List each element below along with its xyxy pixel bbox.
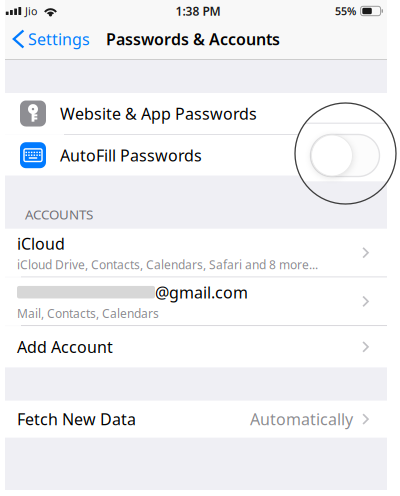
staticText: Mail, Contacts, Calendars	[17, 305, 159, 321]
button[interactable]: iCloud	[5, 229, 387, 277]
staticText: 1:38 PM	[175, 3, 220, 19]
staticText: Website & App Passwords	[60, 103, 257, 124]
staticText: Settings	[28, 28, 90, 50]
staticText: iCloud	[17, 233, 65, 254]
staticText: ACCOUNTS	[25, 205, 93, 223]
button[interactable]: Fetch New Data	[5, 401, 387, 438]
staticText: AutoFill Passwords	[60, 145, 202, 166]
staticText: Automatically	[250, 408, 353, 430]
staticText: Add Account	[17, 336, 113, 357]
staticText: iCloud Drive, Contacts, Calendars, Safar…	[17, 257, 318, 272]
button[interactable]: Settings	[5, 20, 94, 58]
staticText: 55%	[335, 4, 356, 18]
button[interactable]: @gmail.com	[5, 277, 387, 325]
staticText: Passwords & Accounts	[106, 28, 280, 50]
button[interactable]: Website & App Passwords	[5, 93, 387, 134]
staticText: Jio	[25, 4, 37, 18]
button[interactable]: AutoFill Passwords	[5, 135, 387, 176]
staticText: Fetch New Data	[17, 408, 136, 430]
staticText: @gmail.com	[155, 282, 248, 303]
button[interactable]: Add Account	[5, 326, 387, 368]
